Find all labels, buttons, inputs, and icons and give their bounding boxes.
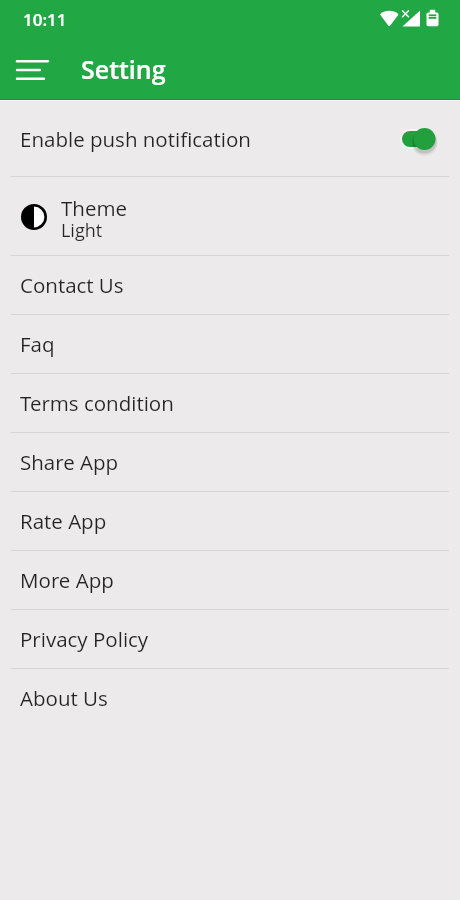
button[interactable]: Privacy Policy xyxy=(0,610,460,668)
staticText: Light xyxy=(61,218,103,243)
button[interactable]: Faq xyxy=(0,315,460,373)
staticText: Share App xyxy=(20,448,119,476)
staticText: Setting xyxy=(81,52,166,86)
staticText: Privacy Policy xyxy=(20,625,149,653)
staticText: Contact Us xyxy=(20,271,124,299)
staticText: Faq xyxy=(20,330,55,358)
staticText: Theme xyxy=(61,194,127,222)
button[interactable]: Rate App xyxy=(0,492,460,550)
button[interactable]: About Us xyxy=(0,669,460,727)
staticText: Rate App xyxy=(20,507,107,535)
button[interactable]: Enable push notification xyxy=(0,101,460,176)
button[interactable]: Contact Us xyxy=(0,256,460,314)
staticText: More App xyxy=(20,566,114,594)
button[interactable]: Share App xyxy=(0,433,460,491)
button[interactable]: Open navigation menu xyxy=(9,47,55,93)
staticText: Enable push notification xyxy=(20,125,251,153)
staticText: Terms condition xyxy=(20,389,174,417)
staticText: 10:11 xyxy=(23,8,67,31)
staticText: About Us xyxy=(20,684,108,712)
button[interactable]: Toggle push notification xyxy=(401,124,443,154)
button[interactable]: Theme xyxy=(0,177,460,255)
button[interactable]: More App xyxy=(0,551,460,609)
button[interactable]: Terms condition xyxy=(0,374,460,432)
